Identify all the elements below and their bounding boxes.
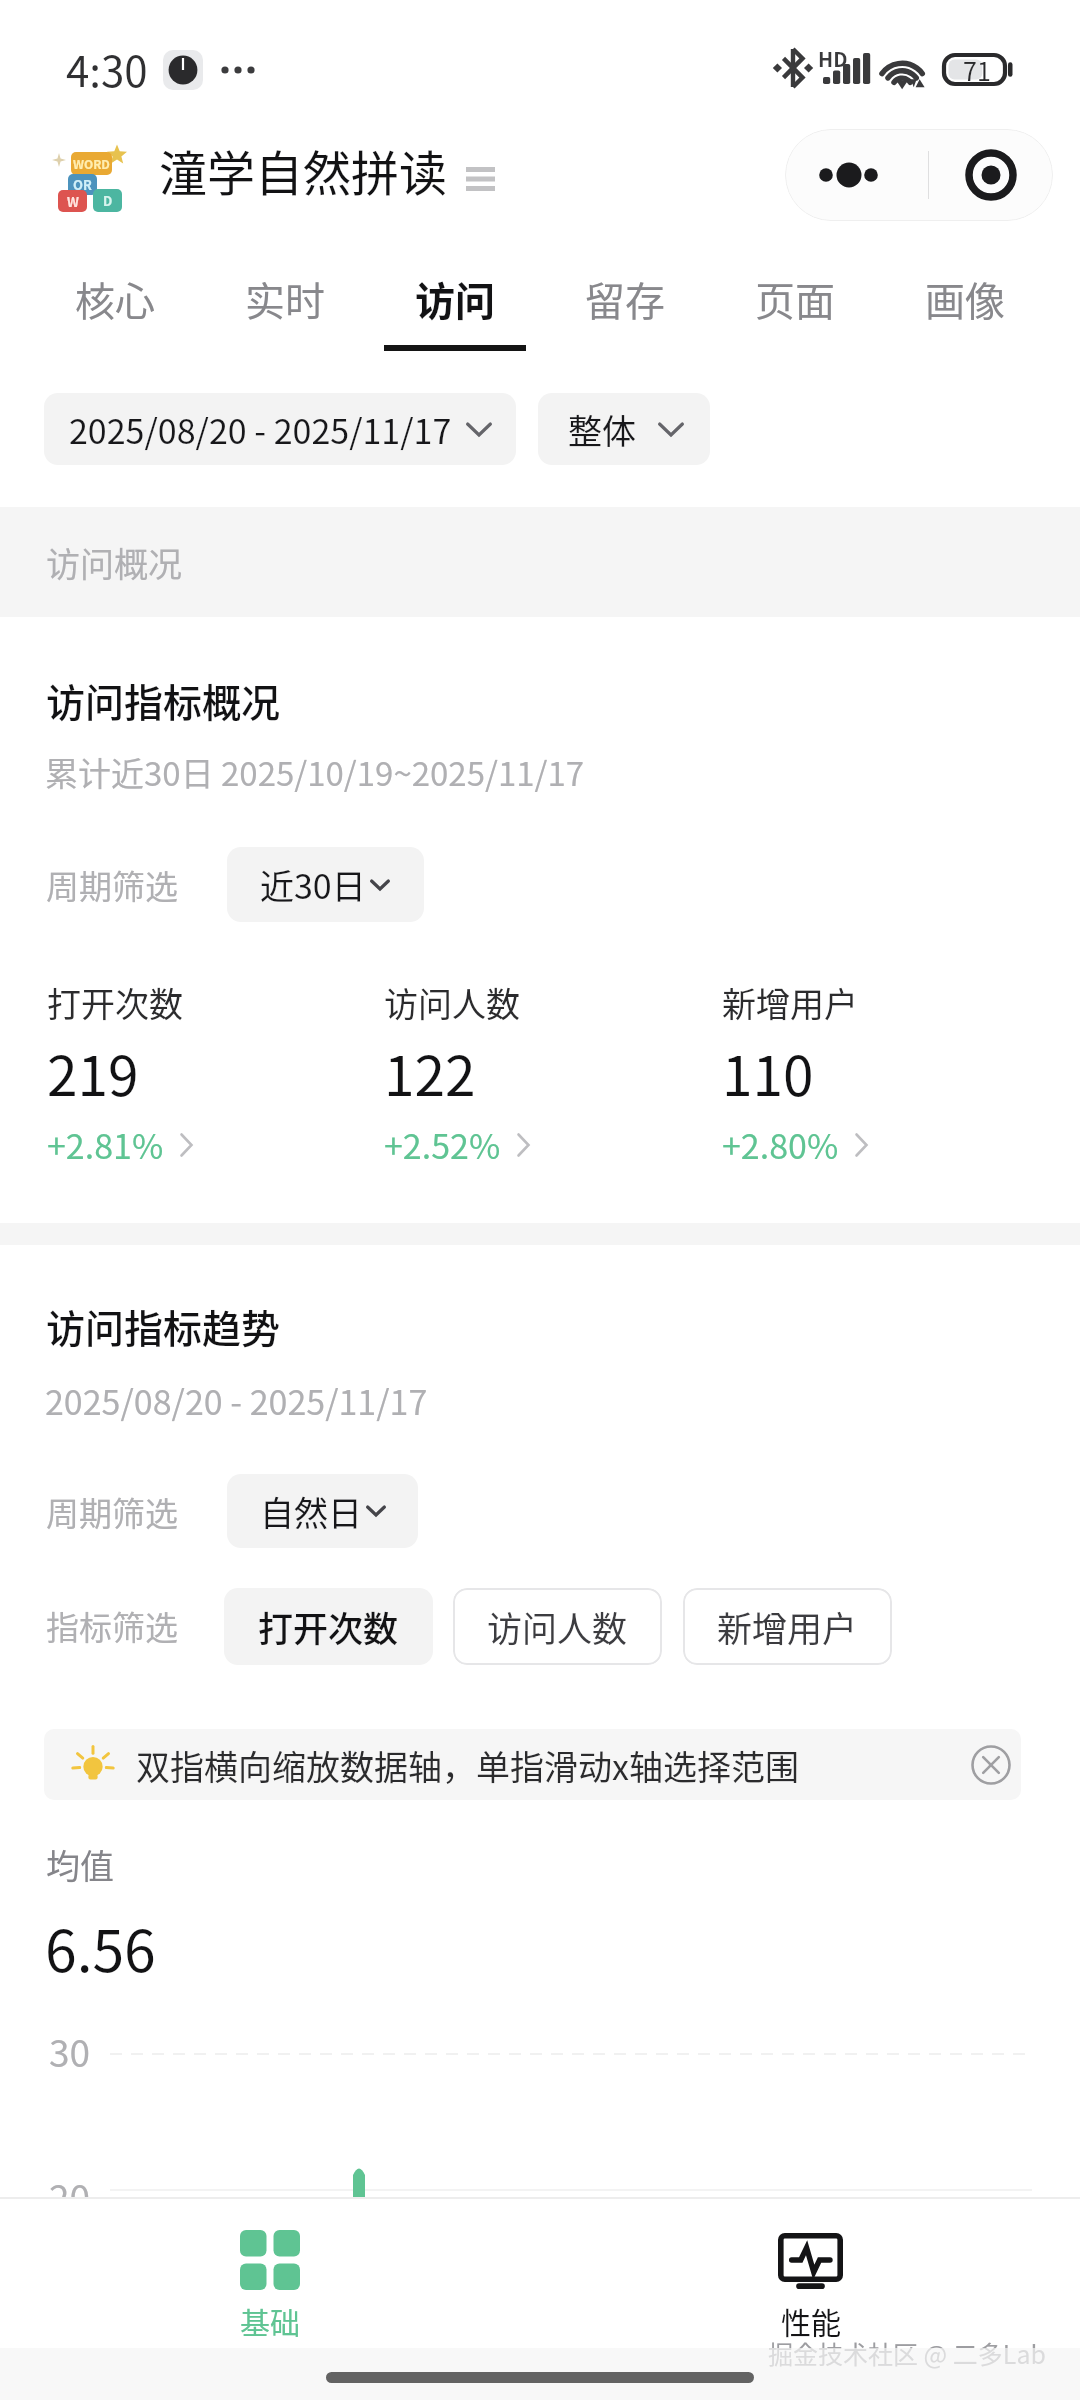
staticText: +2.52%: [384, 1120, 501, 1169]
button[interactable]: 打开次数: [224, 1588, 433, 1665]
button[interactable]: Dismiss tip: [969, 1743, 1013, 1787]
button[interactable]: 页面: [710, 258, 880, 366]
button[interactable]: More options: [785, 129, 928, 221]
button[interactable]: 近30日: [227, 847, 424, 922]
button[interactable]: 新增用户: [722, 978, 1022, 1169]
staticText: 新增用户: [717, 1601, 858, 1652]
button[interactable]: 留存: [540, 258, 710, 366]
staticText: 核心: [75, 270, 155, 328]
staticText: 110: [722, 1032, 814, 1112]
staticText: +2.81%: [47, 1120, 164, 1169]
staticText: D: [103, 191, 113, 210]
button[interactable]: 访问: [370, 258, 540, 366]
button[interactable]: 访问人数: [384, 978, 684, 1169]
staticText: 2025/08/20 - 2025/11/17: [45, 1376, 428, 1425]
button[interactable]: 基础: [0, 2199, 540, 2348]
staticText: 基础: [240, 2299, 300, 2342]
button[interactable]: 自然日: [227, 1474, 418, 1548]
staticText: 累计近30日 2025/10/19~2025/11/17: [45, 748, 585, 796]
staticText: 掘金技术社区 @ 二多Lab: [768, 2335, 1046, 2371]
staticText: 页面: [755, 270, 835, 328]
staticText: 20: [49, 2169, 91, 2223]
staticText: 30: [49, 2024, 91, 2078]
button[interactable]: 新增用户: [683, 1588, 892, 1665]
staticText: 访问: [415, 270, 495, 328]
staticText: 访问人数: [384, 978, 520, 1027]
staticText: 71: [963, 52, 991, 85]
staticText: 122: [384, 1032, 476, 1112]
staticText: HD: [818, 44, 848, 73]
staticText: +2.80%: [722, 1120, 839, 1169]
staticText: 打开次数: [47, 978, 183, 1027]
staticText: 4:30: [66, 38, 148, 99]
button[interactable]: Menu: [457, 155, 503, 203]
staticText: 双指横向缩放数据轴，单指滑动x轴选择范围: [136, 1741, 799, 1790]
button[interactable]: 核心: [30, 258, 200, 366]
staticText: 访问指标趋势: [46, 1298, 281, 1354]
button[interactable]: 实时: [200, 258, 370, 366]
staticText: 均值: [46, 1840, 114, 1889]
staticText: 219: [47, 1032, 139, 1112]
staticText: WORD: [73, 155, 110, 172]
staticText: 2025/08/20 - 2025/11/17: [69, 405, 452, 454]
staticText: 近30日: [260, 860, 366, 909]
staticText: 性能: [781, 2299, 841, 2342]
button[interactable]: Close mini program: [929, 129, 1053, 221]
staticText: 整体: [568, 405, 636, 454]
staticText: 实时: [245, 270, 325, 328]
staticText: OR: [73, 175, 92, 194]
staticText: 访问概况: [46, 538, 182, 587]
staticText: 6.56: [45, 1906, 156, 1989]
staticText: 自然日: [260, 1487, 362, 1536]
button[interactable]: 画像: [880, 258, 1050, 366]
staticText: 留存: [585, 270, 665, 328]
button[interactable]: 2025/08/20 - 2025/11/17: [44, 393, 516, 465]
button[interactable]: 双指横向缩放数据轴，单指滑动x轴选择范围: [44, 1729, 1021, 1800]
staticText: 潼学自然拼读: [159, 135, 448, 205]
staticText: 新增用户: [722, 978, 858, 1027]
button[interactable]: 打开次数: [47, 978, 347, 1169]
staticText: 指标筛选: [46, 1602, 178, 1650]
button[interactable]: 性能: [540, 2199, 1080, 2348]
button[interactable]: 访问人数: [453, 1588, 662, 1665]
staticText: 访问人数: [487, 1601, 628, 1652]
staticText: 访问指标概况: [46, 672, 281, 728]
staticText: 打开次数: [258, 1601, 399, 1652]
staticText: W: [67, 192, 79, 211]
staticText: 周期筛选: [46, 1488, 178, 1536]
staticText: 画像: [925, 270, 1005, 328]
staticText: 周期筛选: [46, 861, 178, 909]
button[interactable]: 整体: [538, 393, 710, 465]
